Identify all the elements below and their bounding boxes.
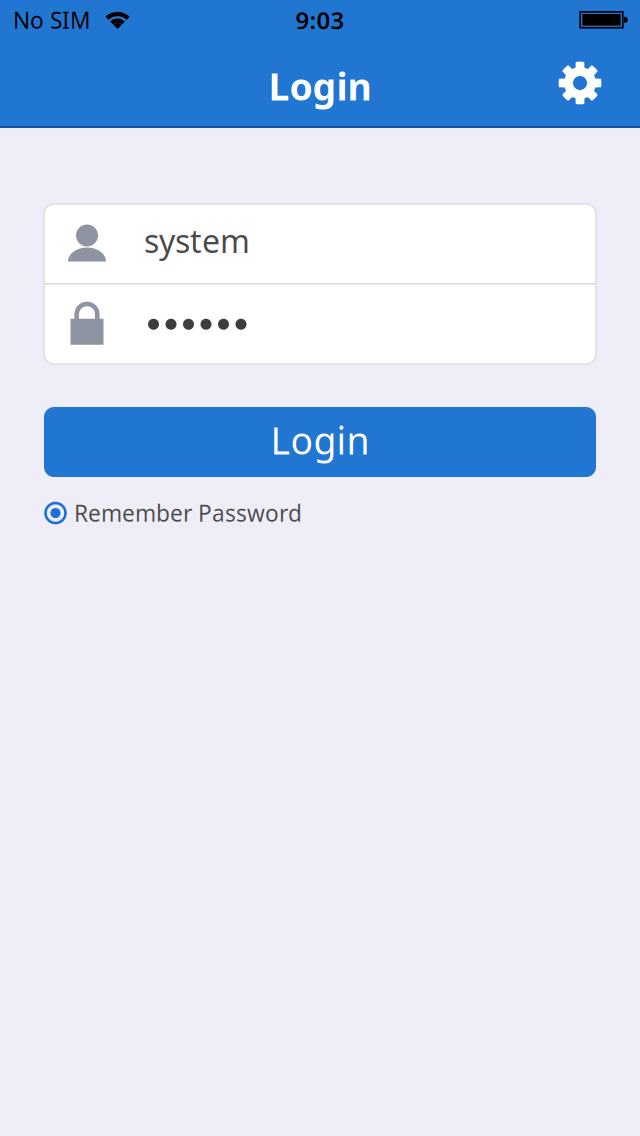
button[interactable]: Username <box>44 204 596 283</box>
staticText: No SIM <box>13 5 91 35</box>
staticText: Login <box>270 415 369 465</box>
staticText: system <box>144 219 250 262</box>
staticText: Remember Password <box>74 498 302 528</box>
staticText: 9:03 <box>295 4 344 36</box>
button[interactable]: Password <box>44 284 596 364</box>
button[interactable]: Login <box>44 407 596 477</box>
button[interactable]: Settings <box>548 51 612 115</box>
staticText: Login <box>268 61 371 111</box>
button[interactable]: Remember Password <box>44 498 302 528</box>
